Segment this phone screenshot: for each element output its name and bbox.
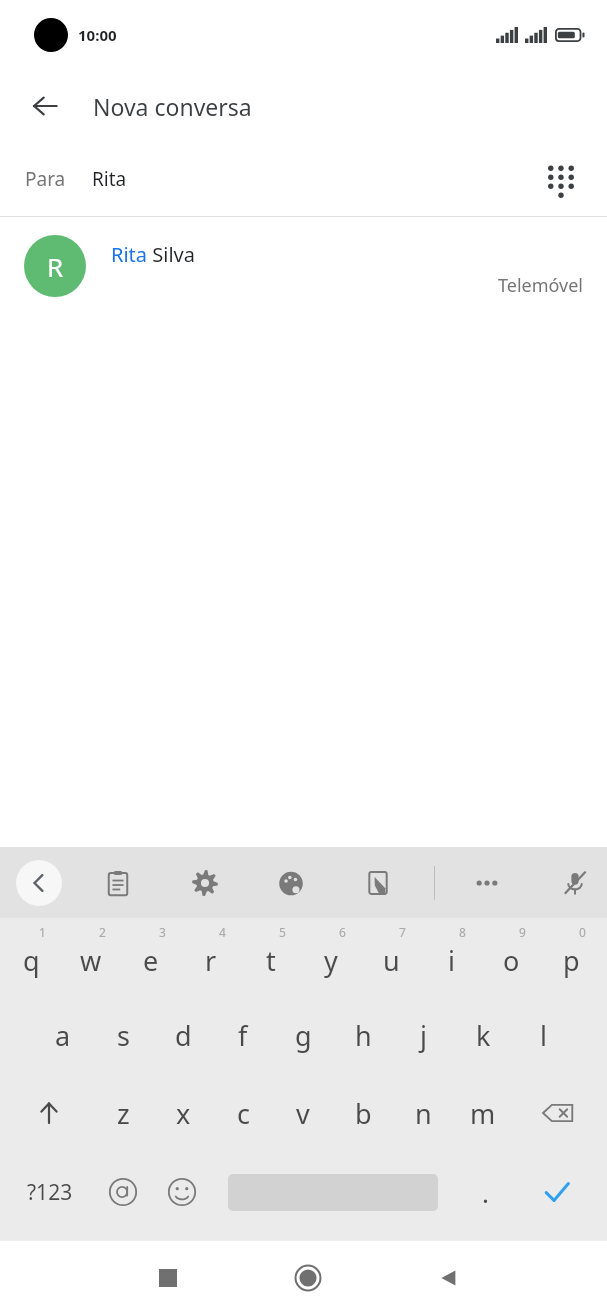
staticText: 10:00	[78, 25, 117, 45]
staticText: R	[47, 249, 64, 284]
button[interactable]: s	[93, 996, 153, 1074]
staticText: 2	[99, 924, 106, 940]
staticText: o	[503, 942, 520, 979]
staticText: s	[117, 1017, 130, 1054]
button[interactable]: Handwriting	[355, 860, 401, 906]
staticText: 0	[579, 924, 586, 940]
button[interactable]: k	[453, 996, 513, 1074]
staticText: r	[205, 942, 217, 979]
button[interactable]: Collapse toolbar	[16, 860, 62, 906]
staticText: 3	[159, 924, 166, 940]
button[interactable]: n	[393, 1074, 453, 1152]
staticText: a	[55, 1017, 71, 1054]
staticText: j	[420, 1017, 427, 1054]
button[interactable]: Themes	[268, 860, 314, 906]
button[interactable]: Back	[421, 1250, 477, 1306]
staticText: b	[355, 1095, 372, 1132]
button[interactable]: 4	[181, 918, 241, 996]
button[interactable]: 1	[1, 918, 61, 996]
staticText: i	[448, 942, 455, 979]
button[interactable]: 6	[301, 918, 361, 996]
button[interactable]: c	[213, 1074, 273, 1152]
staticText: Para	[25, 166, 66, 192]
staticText: 8	[459, 924, 466, 940]
staticText: t	[266, 942, 276, 979]
staticText: k	[476, 1017, 491, 1054]
staticText: .	[482, 1175, 489, 1210]
button[interactable]: At sign	[96, 1152, 150, 1232]
staticText: h	[355, 1017, 372, 1054]
button[interactable]: b	[333, 1074, 393, 1152]
button[interactable]: Done	[529, 1164, 585, 1220]
staticText: 1	[39, 924, 46, 940]
button[interactable]: Shift	[18, 1074, 80, 1152]
button[interactable]: x	[153, 1074, 213, 1152]
button[interactable]: g	[273, 996, 333, 1074]
button[interactable]: j	[393, 996, 453, 1074]
staticText: 4	[219, 924, 226, 940]
staticText: Rita Silva	[111, 241, 195, 268]
button[interactable]: 7	[361, 918, 421, 996]
button[interactable]: .	[462, 1152, 508, 1232]
button[interactable]: m	[453, 1074, 513, 1152]
button[interactable]: R	[0, 217, 607, 321]
staticText: ?123	[27, 1178, 73, 1207]
staticText: y	[324, 942, 338, 979]
button[interactable]: 8	[421, 918, 481, 996]
staticText: u	[383, 942, 400, 979]
staticText: w	[80, 942, 102, 979]
staticText: m	[470, 1095, 496, 1132]
button[interactable]: v	[273, 1074, 333, 1152]
button[interactable]: 2	[61, 918, 121, 996]
staticText: d	[175, 1017, 192, 1054]
staticText: q	[23, 942, 40, 979]
staticText: 6	[339, 924, 346, 940]
button[interactable]: 9	[481, 918, 541, 996]
button[interactable]: z	[93, 1074, 153, 1152]
staticText: 7	[399, 924, 406, 940]
staticText: l	[540, 1017, 547, 1054]
staticText: 5	[279, 924, 286, 940]
button[interactable]: 5	[241, 918, 301, 996]
staticText: v	[296, 1095, 310, 1132]
button[interactable]: l	[513, 996, 573, 1074]
button[interactable]: a	[33, 996, 93, 1074]
button[interactable]: Clipboard	[95, 860, 141, 906]
button[interactable]: More options	[464, 860, 510, 906]
staticText: 9	[519, 924, 526, 940]
staticText: p	[563, 942, 580, 979]
staticText: e	[143, 942, 159, 979]
staticText: Telemóvel	[498, 273, 583, 298]
button[interactable]: ?123	[12, 1152, 88, 1232]
button[interactable]: Emoji	[155, 1152, 209, 1232]
button[interactable]: Dialpad	[535, 153, 587, 205]
button[interactable]: 0	[541, 918, 601, 996]
staticText: Rita	[92, 166, 127, 192]
button[interactable]: Settings	[182, 860, 228, 906]
button[interactable]: Back	[20, 81, 70, 131]
button[interactable]: Backspace	[527, 1074, 589, 1152]
button[interactable]: Recents	[140, 1250, 196, 1306]
button[interactable]: Home	[280, 1250, 336, 1306]
staticText: n	[415, 1095, 432, 1132]
button[interactable]: h	[333, 996, 393, 1074]
button[interactable]: f	[213, 996, 273, 1074]
staticText: f	[238, 1017, 248, 1054]
staticText: x	[176, 1095, 191, 1132]
staticText: Nova conversa	[93, 91, 252, 122]
button[interactable]: 3	[121, 918, 181, 996]
button[interactable]: d	[153, 996, 213, 1074]
staticText: z	[117, 1095, 130, 1132]
staticText: g	[295, 1017, 312, 1054]
button[interactable]: Voice input off	[552, 860, 598, 906]
staticText: c	[237, 1095, 250, 1132]
